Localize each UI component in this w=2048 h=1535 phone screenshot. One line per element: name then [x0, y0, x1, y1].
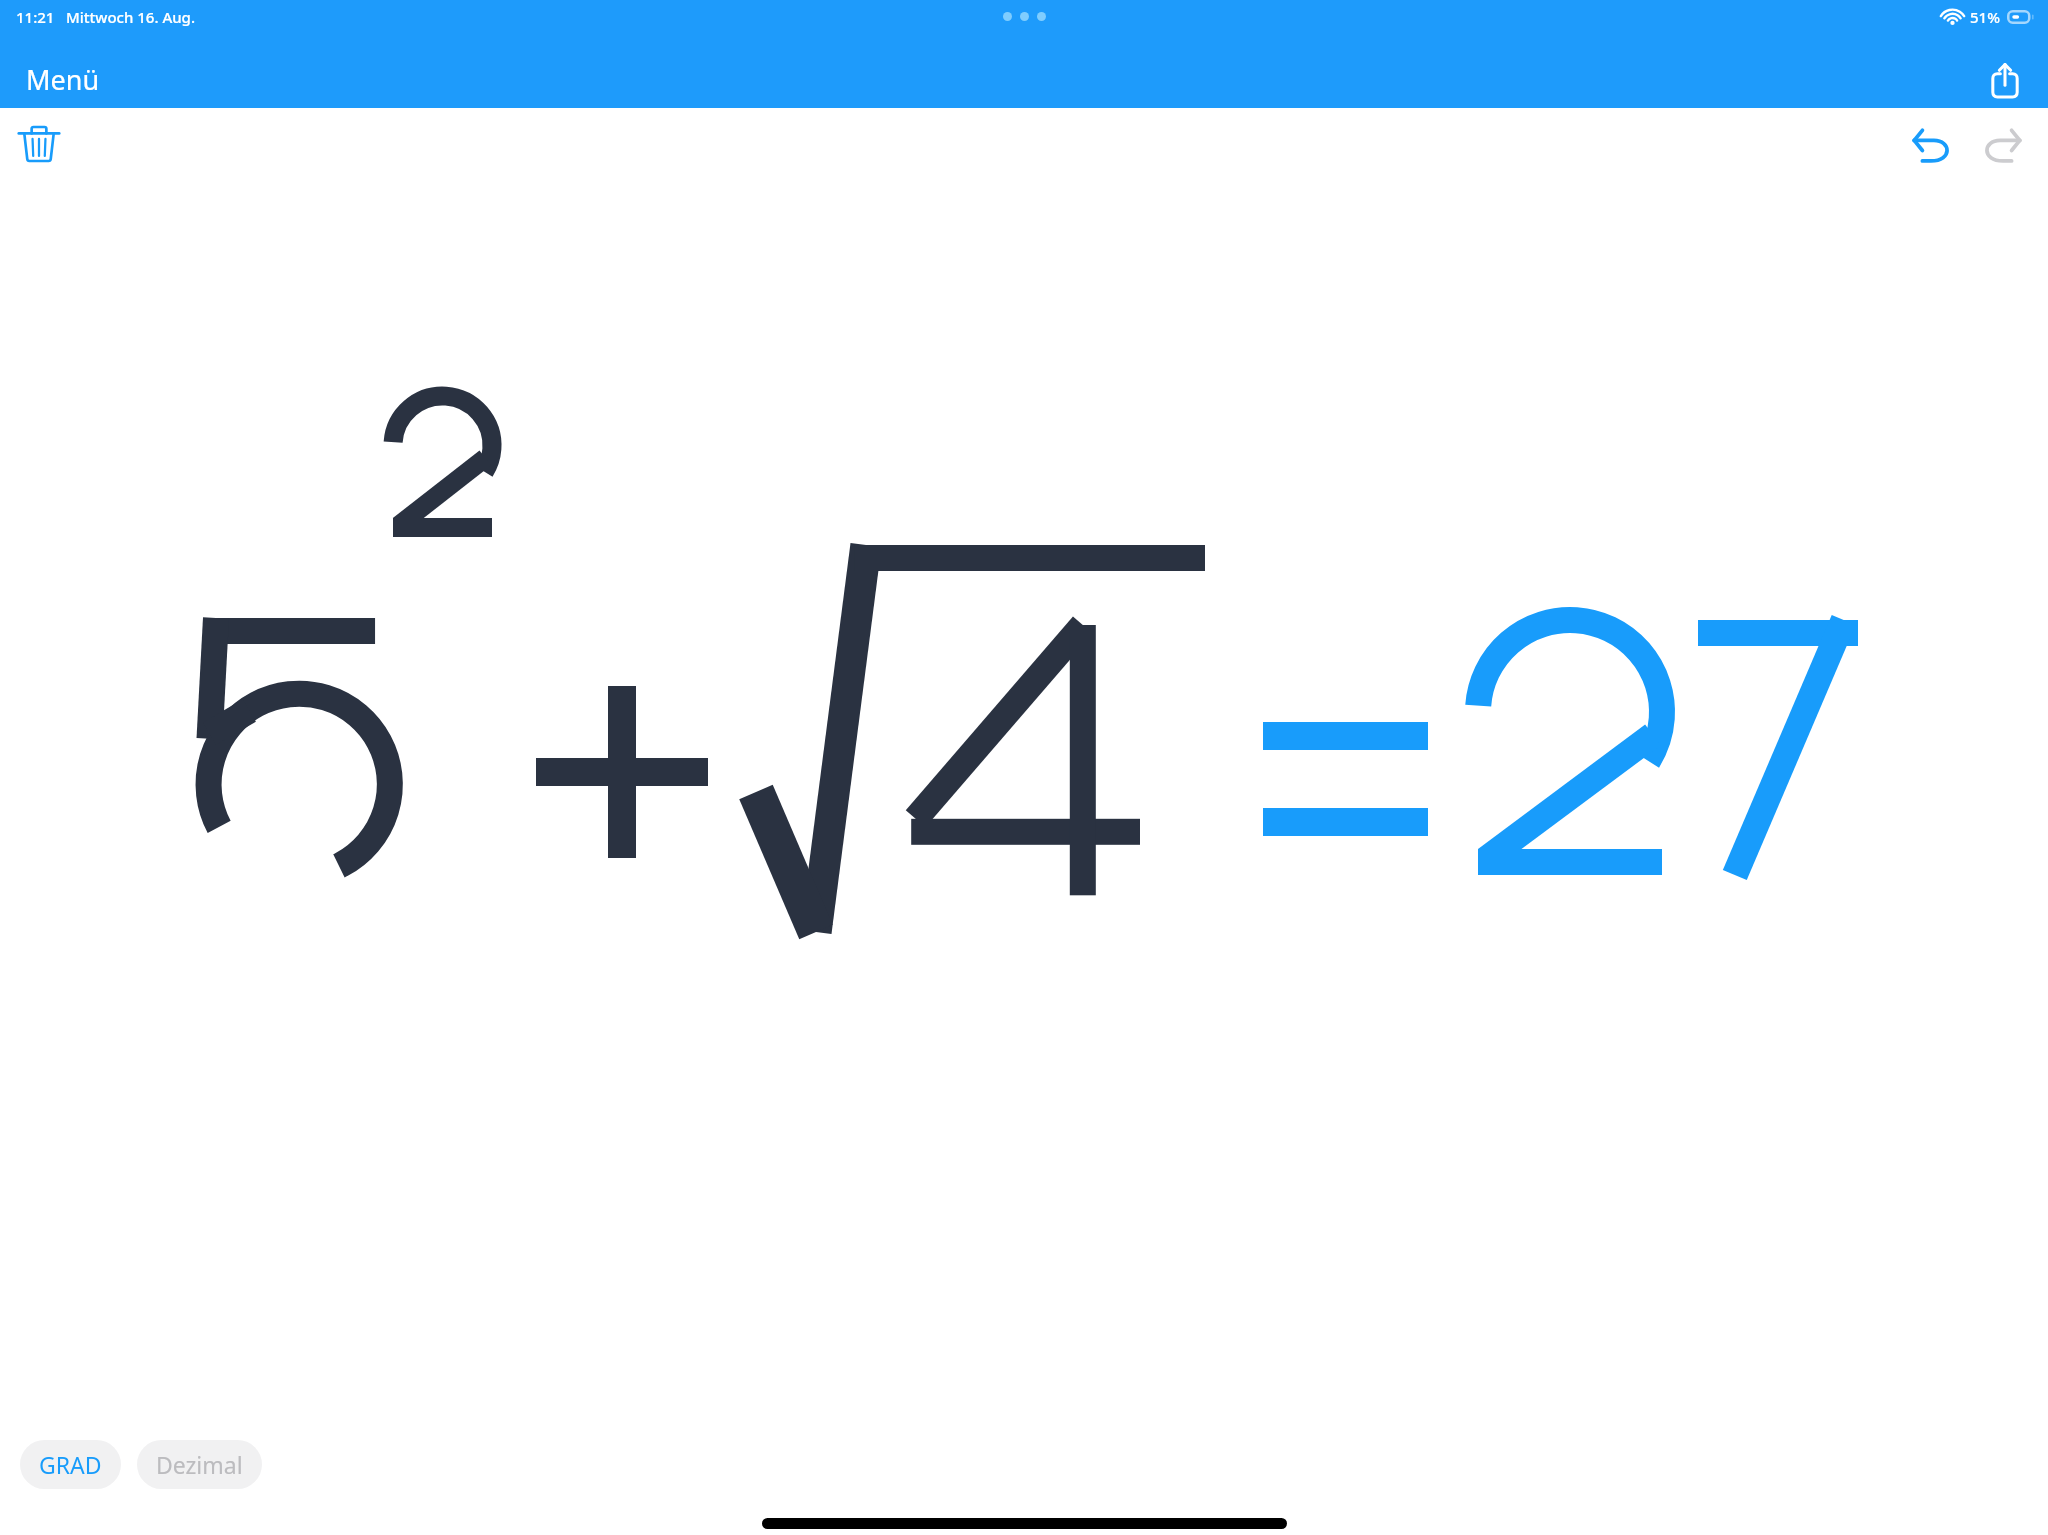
staticText: GRAD	[39, 1449, 102, 1480]
button[interactable]: Dezimal	[137, 1440, 262, 1489]
button[interactable]: GRAD	[20, 1440, 121, 1489]
staticText: Menü	[26, 61, 100, 98]
button[interactable]: Delete	[0, 111, 78, 177]
staticText: Dezimal	[156, 1449, 243, 1480]
staticText: 51%	[1970, 7, 2000, 27]
button[interactable]: Redo	[1970, 116, 2048, 172]
button[interactable]: Undo	[1894, 116, 1970, 172]
staticText: Mittwoch 16. Aug.	[66, 7, 196, 27]
staticText: 11:21	[16, 7, 55, 27]
button[interactable]: Menü	[0, 53, 116, 108]
button[interactable]: Share	[1972, 54, 2048, 108]
button[interactable]: Multitasking	[999, 8, 1050, 25]
